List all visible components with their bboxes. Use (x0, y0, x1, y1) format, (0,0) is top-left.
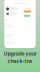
staticText: Upgrade your (3, 50, 36, 57)
staticText: check-ins (7, 57, 32, 65)
